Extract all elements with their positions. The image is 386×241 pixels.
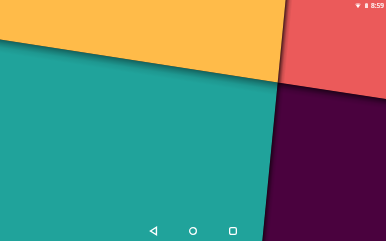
staticText: 8:59 — [371, 1, 384, 10]
button[interactable]: Back — [133, 221, 173, 241]
button[interactable]: Recents — [213, 221, 253, 241]
button[interactable]: Home — [173, 221, 213, 241]
